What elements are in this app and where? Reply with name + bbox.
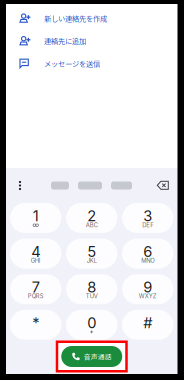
staticText: 新しい連絡先を作成 [44, 13, 107, 23]
staticText: 8 [87, 278, 96, 296]
button[interactable]: # [122, 310, 173, 340]
button[interactable]: 連絡先に追加 [6, 30, 177, 52]
button[interactable]: 9 [122, 274, 173, 304]
staticText: JKL [87, 257, 97, 264]
button[interactable]: Backspace [154, 175, 172, 196]
staticText: MNO [141, 257, 154, 264]
button[interactable]: 5 [66, 239, 117, 269]
staticText: 4 [31, 243, 40, 260]
staticText: PQRS [28, 293, 44, 300]
staticText: 7 [32, 278, 40, 296]
button[interactable]: 6 [122, 239, 173, 269]
button[interactable]: 2 [66, 203, 117, 233]
button[interactable]: 7 [10, 274, 61, 304]
button[interactable]: * [10, 310, 61, 340]
button[interactable]: 3 [122, 203, 173, 233]
staticText: 2 [87, 207, 96, 225]
button[interactable]: 音声通話 [56, 340, 128, 372]
staticText: 3 [143, 207, 152, 225]
staticText: 5 [87, 243, 96, 260]
staticText: GHI [31, 257, 41, 264]
staticText: メッセージを送信 [44, 58, 100, 69]
staticText: TUV [86, 293, 98, 300]
button[interactable]: 新しい連絡先を作成 [6, 7, 177, 30]
staticText: ABC [86, 221, 98, 229]
staticText: * [32, 314, 39, 332]
staticText: DEF [142, 221, 153, 229]
button[interactable]: 8 [66, 274, 117, 304]
staticText: WXYZ [139, 293, 157, 300]
button[interactable]: More options [11, 175, 29, 196]
staticText: 連絡先に追加 [44, 36, 86, 46]
staticText: 0 [87, 314, 96, 332]
staticText: # [143, 314, 152, 332]
staticText: 9 [143, 278, 152, 296]
button[interactable]: 0 [66, 310, 117, 340]
button[interactable]: 4 [10, 239, 61, 269]
staticText: 6 [143, 243, 152, 260]
button[interactable]: 1 [10, 203, 61, 233]
button[interactable]: メッセージを送信 [6, 52, 177, 75]
staticText: 音声通話 [84, 352, 112, 361]
staticText: 1 [33, 207, 39, 225]
